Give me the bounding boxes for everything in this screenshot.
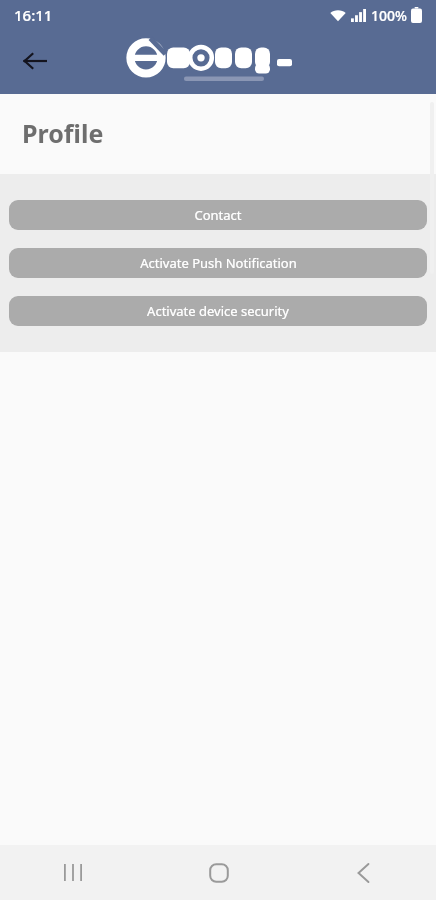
button[interactable]: Recent apps — [0, 845, 146, 900]
staticText: 16:11 — [14, 5, 53, 25]
button[interactable]: Home — [146, 845, 291, 900]
staticText: Profile — [22, 116, 104, 150]
staticText: 100% — [371, 6, 407, 25]
button[interactable]: Back — [291, 845, 436, 900]
button[interactable]: Back — [12, 38, 58, 84]
staticText: Activate device security — [147, 302, 289, 320]
staticText: Contact — [194, 206, 242, 224]
staticText: Activate Push Notification — [140, 254, 297, 272]
button[interactable]: Activate device security — [9, 296, 427, 326]
button[interactable]: Activate Push Notification — [9, 248, 427, 278]
button[interactable]: Contact — [9, 200, 427, 230]
